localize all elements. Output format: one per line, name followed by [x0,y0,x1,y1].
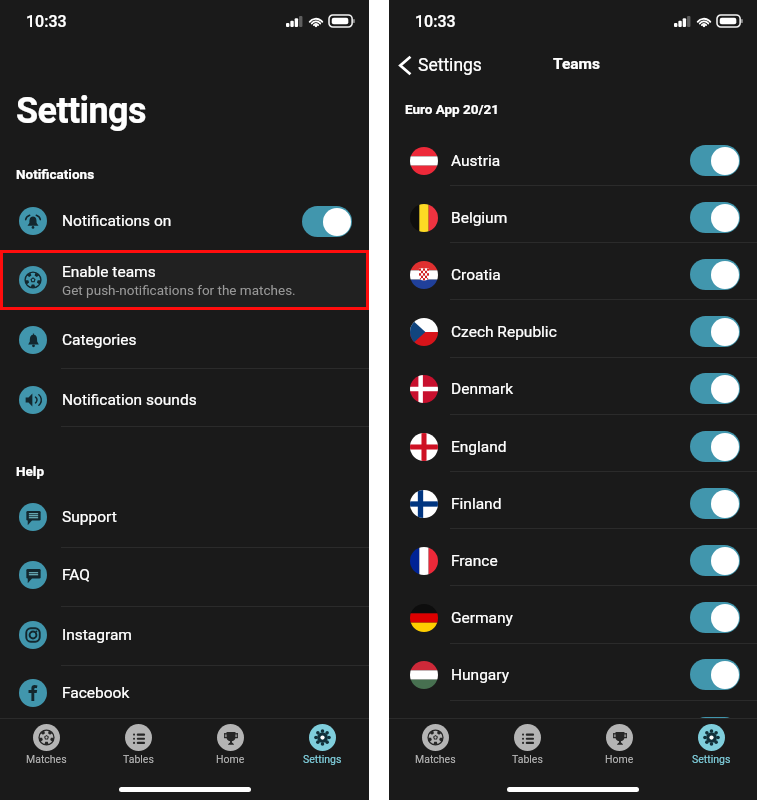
staticText: Notifications on [62,212,172,230]
staticText: Home [216,753,245,765]
button[interactable]: Notification sounds [0,370,369,430]
staticText: France [451,552,690,570]
button[interactable]: Finland [389,475,757,532]
button[interactable]: Hungary [389,646,757,703]
staticText: Germany [451,609,690,627]
staticText: Hungary [451,666,690,684]
button[interactable]: Turn off Germany [690,602,740,633]
staticText: Settings [303,753,342,765]
button[interactable]: Home [184,724,276,766]
staticText: Denmark [451,380,690,398]
staticText: FAQ [62,566,90,584]
button[interactable]: Categories [0,310,369,370]
staticText: Instagram [62,626,132,644]
staticText: Enable teams [62,263,156,281]
button[interactable]: Facebook [0,663,369,723]
button[interactable]: Home [573,724,665,766]
button[interactable]: Settings [665,724,757,766]
staticText: Notification sounds [62,391,197,409]
staticText: Austria [451,152,690,170]
button[interactable]: Turn off Finland [690,488,740,519]
button[interactable]: Turn off England [690,431,740,462]
staticText: Teams [553,55,600,73]
staticText: Czech Republic [451,323,690,341]
button[interactable]: Tables [481,724,573,766]
staticText: Belgium [451,209,690,227]
staticText: Categories [62,331,137,349]
staticText: Help [16,463,45,479]
staticText: England [451,438,690,456]
button[interactable]: France [389,532,757,589]
button[interactable]: Tables [92,724,184,766]
button[interactable]: Turn off Denmark [690,373,740,404]
button[interactable]: Turn off Austria [690,145,740,176]
staticText: Tables [512,753,543,765]
button[interactable]: Turn off France [690,545,740,576]
button[interactable]: Back [399,52,482,78]
button[interactable]: Matches [389,724,481,766]
button[interactable]: Turn off Hungary [690,659,740,690]
button[interactable]: Turn off Iceland [690,717,740,748]
button[interactable]: Support [0,487,369,547]
button[interactable]: Turn off Notifications on [302,206,352,237]
staticText: Matches [26,753,67,765]
button[interactable]: Czech Republic [389,303,757,360]
staticText: Facebook [62,684,130,702]
staticText: Tables [123,753,154,765]
button[interactable]: Germany [389,589,757,646]
button[interactable]: Turn off Croatia [690,259,740,290]
button[interactable]: Austria [389,132,757,189]
button[interactable]: Notifications on [0,191,369,251]
button[interactable]: FAQ [0,545,369,605]
button[interactable]: Turn off Czech Republic [690,316,740,347]
button[interactable]: Instagram [0,605,369,665]
staticText: Iceland [451,724,690,742]
button[interactable]: Denmark [389,360,757,417]
staticText: Home [605,753,634,765]
staticText: Get push-notifications for the matches. [62,282,296,298]
button[interactable]: Enable teams [0,250,369,310]
button[interactable]: Matches [0,724,92,766]
button[interactable]: Croatia [389,246,757,303]
staticText: Matches [415,753,456,765]
button[interactable]: Turn off Belgium [690,202,740,233]
staticText: Notifications [16,166,95,182]
staticText: Support [62,508,117,526]
staticText: Settings [418,55,482,76]
staticText: Settings [16,90,146,132]
staticText: Finland [451,495,690,513]
button[interactable]: Settings [276,724,368,766]
staticText: 10:33 [26,12,67,31]
staticText: Settings [692,753,731,765]
button[interactable]: Iceland [389,704,757,761]
other: Back [399,56,412,75]
button[interactable]: Belgium [389,189,757,246]
button[interactable]: England [389,418,757,475]
staticText: 10:33 [415,12,456,31]
staticText: Euro App 20/21 [405,101,500,117]
staticText: Croatia [451,266,690,284]
